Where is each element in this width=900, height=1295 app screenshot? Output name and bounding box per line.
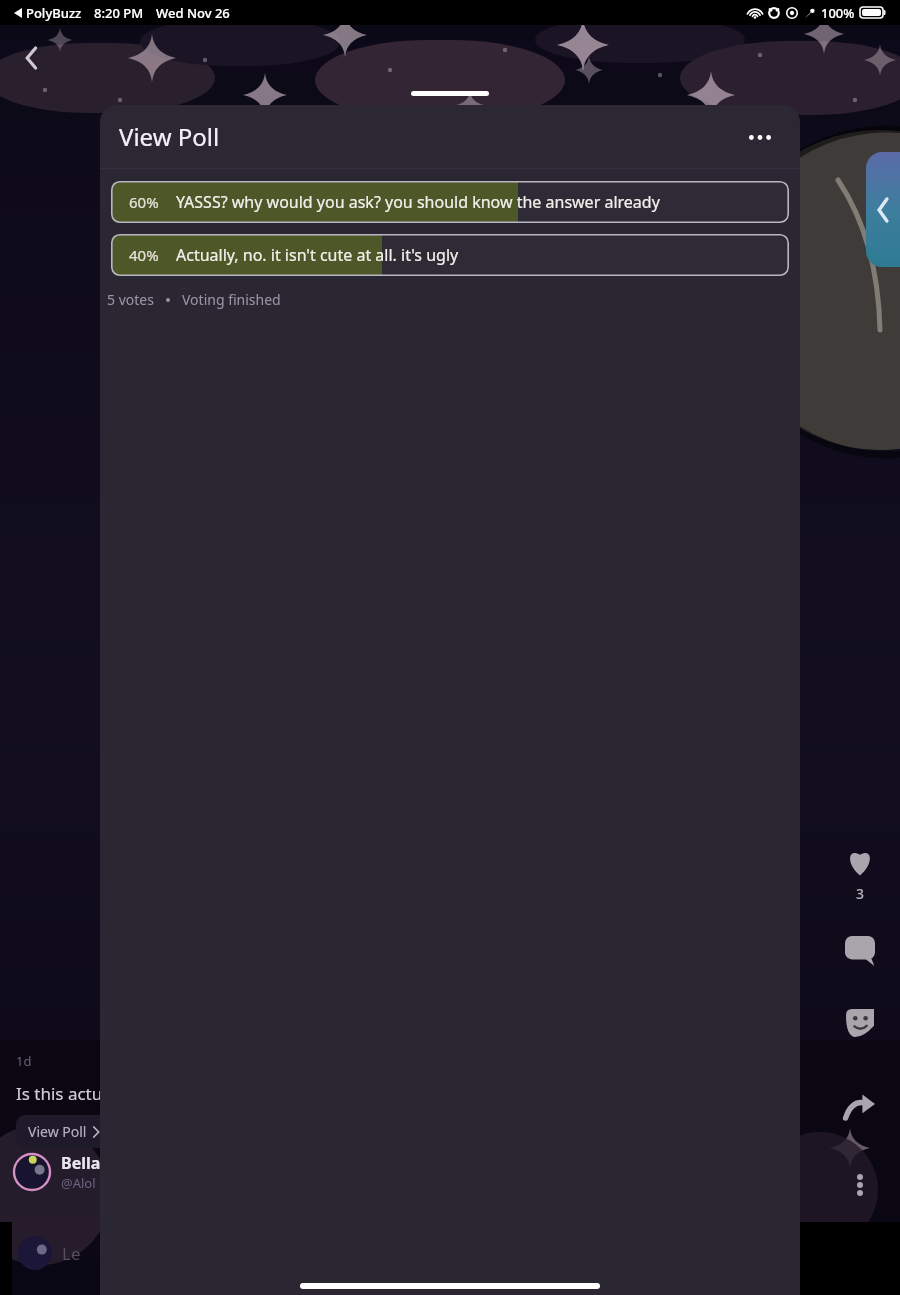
staticText: 8:20 PM bbox=[94, 4, 144, 22]
staticText: Is this actua bbox=[16, 1082, 112, 1105]
staticText: Actually, no. it isn't cute at all. it's… bbox=[176, 244, 459, 266]
staticText: Le bbox=[62, 1242, 81, 1265]
staticText: Bella bbox=[61, 1152, 101, 1174]
button[interactable]: More options bbox=[838, 1163, 882, 1207]
staticText: View Poll bbox=[119, 120, 220, 153]
staticText: 1d bbox=[16, 1052, 32, 1070]
staticText: 100% bbox=[821, 4, 855, 22]
staticText: PolyBuzz bbox=[26, 4, 82, 22]
button[interactable]: Open panel bbox=[866, 152, 900, 267]
staticText: YASSS? why would you ask? you should kno… bbox=[176, 191, 660, 213]
button[interactable]: Comment bbox=[838, 929, 882, 973]
staticText: Wed Nov 26 bbox=[156, 4, 230, 22]
button[interactable]: Share bbox=[838, 1087, 882, 1131]
button[interactable]: 40% bbox=[111, 234, 789, 276]
staticText: 5 votes bbox=[107, 290, 154, 309]
button[interactable]: Back bbox=[12, 38, 52, 78]
button[interactable]: More bbox=[740, 117, 780, 157]
staticText: 60% bbox=[129, 192, 159, 212]
button[interactable]: Like bbox=[838, 840, 882, 884]
button[interactable]: View Poll bbox=[28, 1122, 101, 1141]
staticText: @Alol bbox=[61, 1174, 96, 1192]
staticText: 40% bbox=[129, 245, 159, 265]
button[interactable]: 60% bbox=[111, 181, 789, 223]
staticText: View Poll bbox=[28, 1122, 87, 1141]
button[interactable]: Sticker bbox=[838, 1001, 882, 1045]
staticText: Voting finished bbox=[182, 290, 281, 309]
staticText: 3 bbox=[856, 884, 865, 903]
